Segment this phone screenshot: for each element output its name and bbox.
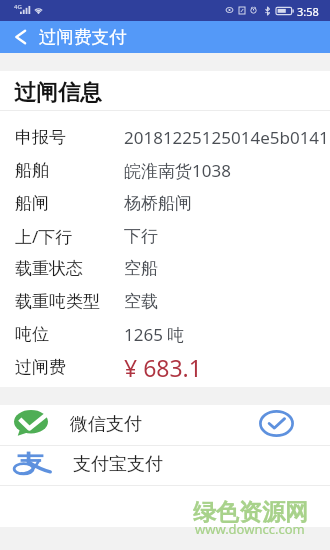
button[interactable]: 上/下行 [0, 220, 330, 252]
staticText: 微信支付 [70, 413, 142, 436]
staticText: 绿色资源网 [193, 498, 308, 527]
staticText: 载重状态 [15, 258, 83, 279]
staticText: 皖淮南货1038 [124, 159, 231, 182]
button[interactable]: 申报号 [0, 121, 330, 153]
staticText: 杨桥船闸 [124, 193, 192, 214]
button[interactable]: 过闸费 [0, 351, 330, 383]
staticText: 空载 [124, 291, 158, 312]
staticText: 20181225125014e5b0141 [124, 126, 329, 149]
staticText: 过闸费 [15, 357, 66, 378]
button[interactable]: 船闸 [0, 187, 330, 219]
button[interactable]: 船舶 [0, 154, 330, 186]
staticText: ¥ 683.1 [124, 352, 202, 383]
staticText: 过闸费支付 [39, 26, 127, 48]
staticText: 3:58 [297, 4, 319, 19]
staticText: 申报号 [15, 127, 66, 148]
staticText: 4G [14, 3, 22, 11]
staticText: 过闸信息 [14, 79, 102, 107]
staticText: 吨位 [15, 324, 49, 345]
button[interactable]: 吨位 [0, 318, 330, 350]
staticText: 上/下行 [15, 225, 73, 248]
staticText: 船闸 [15, 193, 49, 214]
staticText: 1265 吨 [124, 323, 185, 346]
staticText: 载重吨类型 [15, 291, 100, 312]
button[interactable]: 支付宝支付 [0, 445, 330, 485]
staticText: 下行 [124, 226, 158, 247]
button[interactable]: 载重吨类型 [0, 285, 330, 317]
staticText: 船舶 [15, 160, 49, 181]
button[interactable]: Selected payment method [256, 403, 296, 443]
button[interactable]: 微信支付 [0, 405, 330, 445]
button[interactable]: Back [0, 21, 38, 53]
button[interactable]: 载重状态 [0, 252, 330, 284]
staticText: 支付宝支付 [73, 453, 163, 476]
staticText: www.downcc.com [195, 520, 305, 538]
staticText: 空船 [124, 258, 158, 279]
